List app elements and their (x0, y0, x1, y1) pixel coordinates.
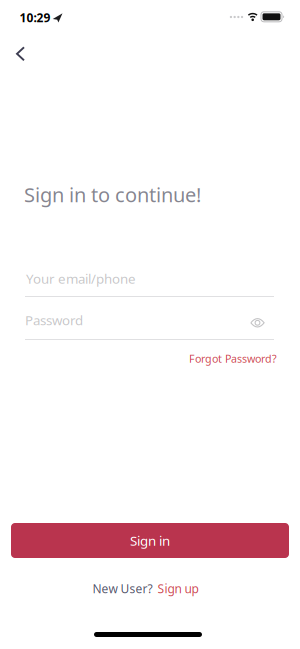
staticText: New User? (92, 580, 152, 596)
button[interactable]: Show password (250, 317, 265, 329)
staticText: Sign up (157, 580, 198, 596)
staticText: Sign in (130, 532, 170, 549)
button[interactable]: Sign in (11, 523, 289, 558)
staticText: Forgot Password? (189, 351, 277, 366)
staticText: Your email/phone (26, 270, 136, 287)
staticText: Password (25, 311, 83, 329)
button[interactable]: Sign up (157, 580, 198, 596)
button[interactable]: Forgot Password? (189, 351, 277, 366)
staticText: 10:29 (19, 10, 50, 26)
button[interactable]: Back (6, 40, 34, 68)
staticText: Sign in to continue! (24, 181, 201, 208)
